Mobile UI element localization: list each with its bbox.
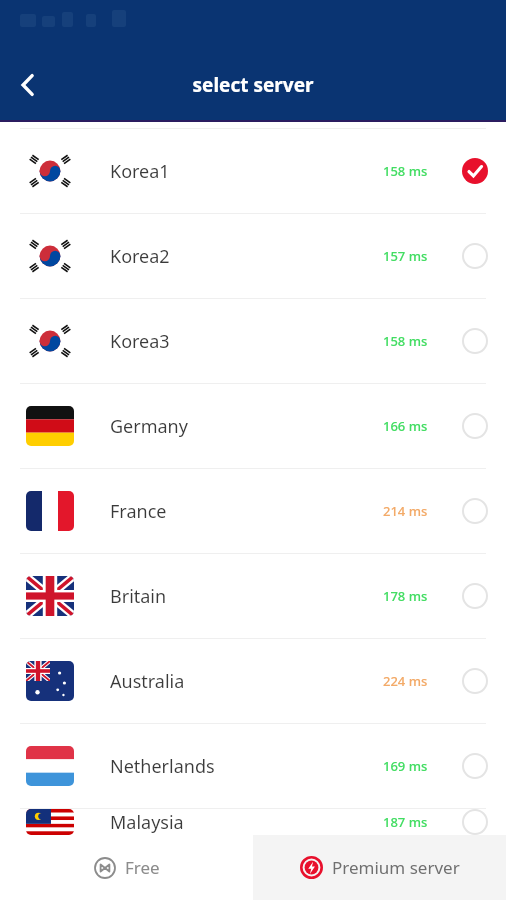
- button[interactable]: Germany: [0, 384, 506, 468]
- staticText: 158 ms: [383, 332, 428, 350]
- button[interactable]: Korea3: [0, 299, 506, 383]
- staticText: select server: [0, 72, 506, 98]
- button[interactable]: Britain: [0, 554, 506, 638]
- staticText: 178 ms: [383, 587, 428, 605]
- button[interactable]: Free: [0, 835, 253, 900]
- staticText: 158 ms: [383, 162, 428, 180]
- staticText: 166 ms: [383, 417, 428, 435]
- staticText: 157 ms: [383, 247, 428, 265]
- staticText: Premium server: [332, 856, 460, 879]
- staticText: 169 ms: [383, 757, 428, 775]
- button[interactable]: Premium server: [253, 835, 506, 900]
- staticText: Korea3: [110, 329, 170, 354]
- button[interactable]: Netherlands: [0, 724, 506, 808]
- staticText: Australia: [110, 669, 185, 694]
- staticText: 224 ms: [383, 672, 428, 690]
- staticText: Germany: [110, 414, 188, 439]
- staticText: France: [110, 499, 167, 524]
- staticText: 214 ms: [383, 502, 428, 520]
- button[interactable]: Back: [0, 54, 56, 116]
- staticText: 187 ms: [383, 813, 428, 831]
- button[interactable]: Malaysia: [0, 809, 506, 835]
- staticText: Free: [125, 856, 160, 879]
- button[interactable]: Korea1: [0, 129, 506, 213]
- button[interactable]: Australia: [0, 639, 506, 723]
- staticText: Korea2: [110, 244, 170, 269]
- staticText: Britain: [110, 584, 167, 609]
- button[interactable]: Korea2: [0, 214, 506, 298]
- staticText: Netherlands: [110, 754, 215, 779]
- staticText: Korea1: [110, 159, 170, 184]
- button[interactable]: France: [0, 469, 506, 553]
- staticText: Malaysia: [110, 810, 184, 835]
